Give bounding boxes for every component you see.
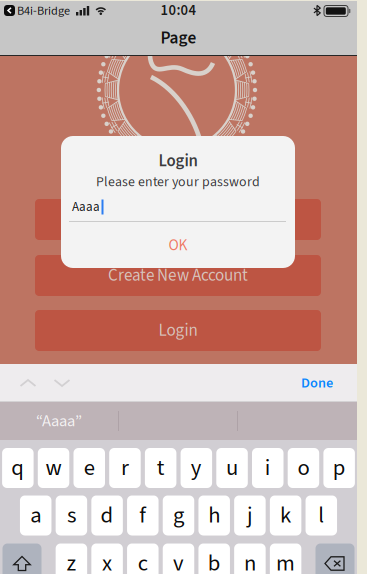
- staticText: q: [11, 452, 24, 484]
- button[interactable]: j: [234, 495, 266, 535]
- button[interactable]: Delete: [315, 543, 354, 574]
- staticText: j: [247, 499, 253, 532]
- staticText: y: [191, 452, 202, 484]
- button[interactable]: i: [252, 448, 283, 488]
- button[interactable]: v: [163, 543, 194, 574]
- staticText: s: [67, 499, 76, 532]
- staticText: f: [139, 499, 146, 532]
- button[interactable]: m: [270, 543, 301, 574]
- staticText: Page: [160, 26, 196, 50]
- staticText: u: [226, 452, 238, 484]
- button[interactable]: p: [323, 448, 355, 488]
- button[interactable]: l: [305, 495, 337, 535]
- button[interactable]: x: [91, 543, 123, 574]
- button[interactable]: w: [38, 448, 69, 488]
- staticText: x: [102, 547, 112, 574]
- button[interactable]: Back to B4i-Bridge: [4, 5, 15, 16]
- staticText: 10:04: [160, 0, 196, 21]
- button[interactable]: b: [198, 543, 230, 574]
- staticText: g: [173, 499, 184, 532]
- button[interactable]: Previous field: [11, 364, 45, 402]
- staticText: p: [333, 452, 346, 484]
- staticText: l: [318, 499, 324, 532]
- staticText: t: [157, 452, 165, 484]
- staticText: n: [244, 547, 256, 574]
- staticText: OK: [168, 234, 187, 256]
- button[interactable]: t: [145, 448, 176, 488]
- staticText: z: [66, 547, 76, 574]
- button[interactable]: Create New Account: [35, 255, 321, 296]
- staticText: Login: [158, 149, 197, 173]
- button[interactable]: f: [127, 495, 158, 535]
- staticText: d: [101, 499, 114, 532]
- staticText: a: [30, 499, 41, 532]
- button[interactable]: Sign In: [35, 199, 321, 240]
- staticText: Done: [301, 373, 333, 393]
- staticText: Sign In: [154, 207, 201, 232]
- staticText: Login: [158, 318, 197, 343]
- button[interactable]: e: [73, 448, 105, 488]
- button[interactable]: o: [288, 448, 319, 488]
- button[interactable]: r: [109, 448, 141, 488]
- button[interactable]: y: [181, 448, 212, 488]
- staticText: “Aaaa”: [36, 409, 82, 433]
- button[interactable]: d: [91, 495, 123, 535]
- button[interactable]: Done: [286, 364, 348, 402]
- staticText: r: [121, 452, 129, 484]
- button[interactable]: u: [216, 448, 248, 488]
- staticText: b: [208, 547, 221, 574]
- staticText: B4i-Bridge: [17, 2, 70, 20]
- staticText: e: [84, 452, 95, 484]
- button[interactable]: Shift: [2, 543, 41, 574]
- staticText: k: [280, 499, 291, 532]
- staticText: v: [173, 547, 184, 574]
- button[interactable]: h: [198, 495, 230, 535]
- button[interactable]: q: [2, 448, 34, 488]
- staticText: Aaaa: [72, 198, 100, 216]
- staticText: o: [297, 452, 309, 484]
- staticText: w: [45, 452, 61, 484]
- staticText: c: [138, 547, 148, 574]
- button[interactable]: s: [56, 495, 87, 535]
- button[interactable]: “Aaaa”: [0, 402, 118, 440]
- button[interactable]: z: [56, 543, 87, 574]
- staticText: h: [208, 499, 220, 532]
- staticText: Create New Account: [108, 263, 248, 288]
- button[interactable]: n: [234, 543, 266, 574]
- button[interactable]: g: [163, 495, 194, 535]
- staticText: m: [276, 547, 295, 574]
- staticText: Please enter your password: [96, 172, 260, 192]
- button[interactable]: a: [20, 495, 51, 535]
- button[interactable]: k: [270, 495, 301, 535]
- button[interactable]: OK: [61, 223, 295, 268]
- staticText: i: [265, 452, 271, 484]
- button[interactable]: Login: [35, 310, 321, 351]
- button[interactable]: Next field: [45, 364, 79, 402]
- button[interactable]: c: [127, 543, 159, 574]
